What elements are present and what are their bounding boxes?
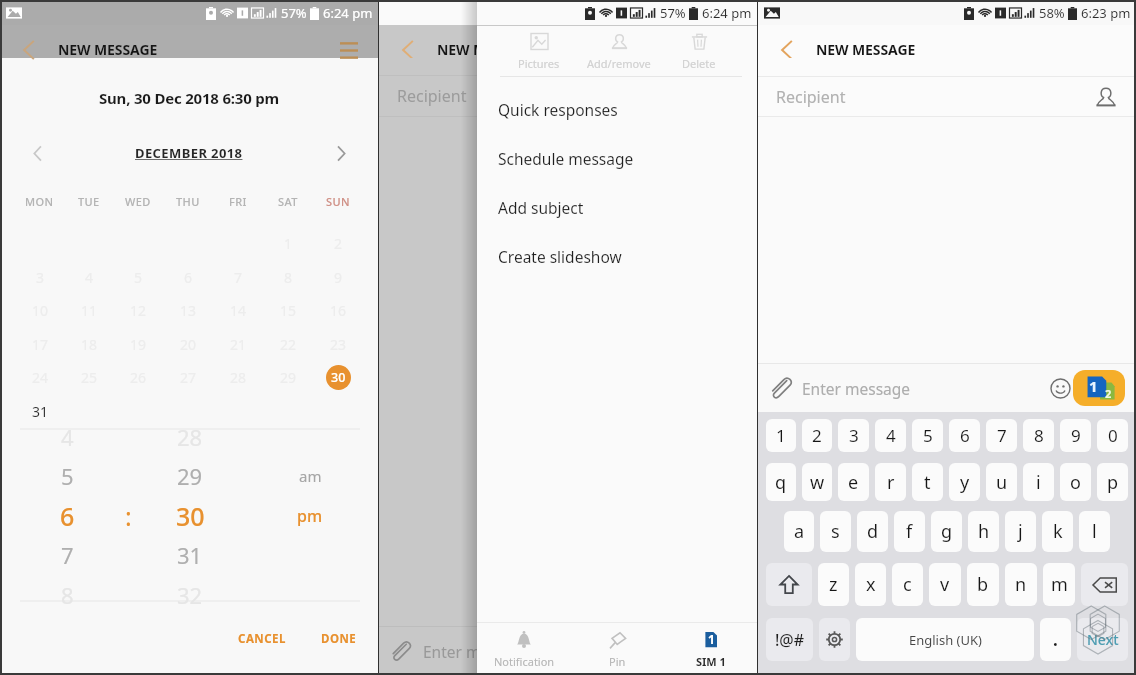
button[interactable]: .: [1040, 618, 1071, 661]
button[interactable]: DONE: [311, 623, 367, 655]
button[interactable]: 5: [912, 419, 943, 452]
button[interactable]: 32: [166, 576, 214, 614]
button[interactable]: Keyboard settings: [819, 618, 850, 661]
button[interactable]: 29: [166, 457, 214, 495]
button[interactable]: o: [1060, 463, 1091, 501]
button[interactable]: 7: [45, 536, 89, 574]
button[interactable]: c: [892, 563, 923, 606]
button[interactable]: 1: [664, 623, 757, 675]
button[interactable]: 30: [166, 497, 214, 535]
button[interactable]: Emoji: [1050, 378, 1071, 399]
button[interactable]: m: [1043, 563, 1075, 606]
button[interactable]: CANCEL: [228, 623, 296, 655]
button[interactable]: 4: [45, 418, 89, 456]
button[interactable]: DECEMBER 2018: [135, 144, 243, 162]
button[interactable]: Enter message: [802, 378, 911, 399]
button[interactable]: 2: [802, 419, 832, 452]
button[interactable]: Add subject: [477, 183, 757, 232]
button[interactable]: English (UK): [856, 618, 1034, 661]
button[interactable]: 5: [45, 457, 89, 495]
button[interactable]: 31: [26, 397, 54, 425]
button[interactable]: Add contact: [1094, 85, 1118, 109]
button[interactable]: 8: [1023, 419, 1054, 452]
button[interactable]: t: [912, 463, 943, 501]
button[interactable]: g: [931, 511, 962, 552]
button[interactable]: Next month: [326, 138, 356, 168]
button[interactable]: Recipient: [758, 77, 1136, 116]
button[interactable]: Schedule message: [477, 134, 757, 183]
button[interactable]: 28: [166, 418, 214, 456]
button[interactable]: Previous month: [22, 138, 52, 168]
button[interactable]: Add/remove: [579, 26, 659, 76]
button[interactable]: Backspace: [1081, 563, 1128, 606]
button[interactable]: a: [784, 511, 814, 552]
button[interactable]: 6: [949, 419, 980, 452]
button[interactable]: p: [1097, 463, 1128, 501]
button[interactable]: q: [766, 463, 796, 501]
button[interactable]: Back: [11, 33, 45, 66]
button[interactable]: r: [875, 463, 906, 501]
button[interactable]: d: [857, 511, 888, 552]
button[interactable]: z: [818, 563, 849, 606]
button[interactable]: 4: [875, 419, 906, 452]
button[interactable]: j: [1005, 511, 1036, 552]
button[interactable]: Delete: [659, 26, 739, 76]
button[interactable]: k: [1042, 511, 1073, 552]
button[interactable]: 8: [45, 576, 89, 614]
button[interactable]: e: [838, 463, 869, 501]
button[interactable]: u: [986, 463, 1017, 501]
button[interactable]: Next: [1077, 618, 1128, 661]
button[interactable]: f: [894, 511, 925, 552]
button[interactable]: Back: [769, 33, 803, 66]
button[interactable]: n: [1005, 563, 1037, 606]
button[interactable]: y: [949, 463, 980, 501]
button[interactable]: Pictures: [499, 26, 579, 76]
button[interactable]: 1: [766, 419, 796, 452]
button[interactable]: Quick responses: [477, 85, 757, 134]
button[interactable]: Notification: [477, 623, 571, 675]
button[interactable]: More options: [332, 33, 366, 66]
button[interactable]: Back: [390, 33, 424, 66]
button[interactable]: v: [929, 563, 961, 606]
button[interactable]: am: [288, 457, 332, 495]
button[interactable]: 7: [986, 419, 1017, 452]
button[interactable]: h: [968, 511, 999, 552]
button[interactable]: Pin: [571, 623, 664, 675]
button[interactable]: 30: [326, 365, 351, 390]
button[interactable]: Create slideshow: [477, 232, 757, 281]
button[interactable]: 0: [1097, 419, 1128, 452]
button[interactable]: 6: [45, 497, 89, 535]
button[interactable]: pm: [288, 497, 332, 535]
button[interactable]: !@#: [766, 618, 813, 661]
button[interactable]: 3: [838, 419, 869, 452]
